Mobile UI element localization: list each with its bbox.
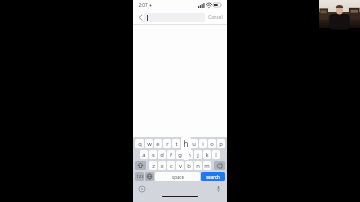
button[interactable]: x bbox=[158, 161, 166, 170]
button[interactable]: i bbox=[199, 139, 207, 148]
button[interactable]: Dictate bbox=[214, 185, 222, 193]
button[interactable] bbox=[144, 13, 205, 22]
staticText: w bbox=[147, 140, 152, 148]
staticText: s bbox=[152, 151, 155, 159]
button[interactable]: u bbox=[190, 139, 198, 148]
button[interactable]: e bbox=[154, 139, 162, 148]
button[interactable]: Emoji bbox=[138, 185, 146, 193]
staticText: y bbox=[184, 140, 187, 148]
staticText: r bbox=[166, 140, 169, 148]
staticText: j bbox=[197, 151, 199, 159]
button[interactable]: space bbox=[155, 172, 200, 181]
staticText: h bbox=[187, 151, 191, 159]
button[interactable]: r bbox=[163, 139, 171, 148]
button[interactable]: n bbox=[194, 161, 202, 170]
button[interactable]: m bbox=[203, 161, 211, 170]
button[interactable]: search bbox=[201, 172, 225, 181]
button[interactable]: Shift bbox=[135, 161, 146, 170]
button[interactable]: p bbox=[217, 139, 225, 148]
staticText: 2:07 bbox=[138, 2, 148, 8]
staticText: e bbox=[156, 140, 160, 148]
button[interactable]: k bbox=[203, 150, 211, 159]
staticText: z bbox=[152, 162, 155, 170]
staticText: m bbox=[204, 162, 210, 170]
staticText: g bbox=[178, 151, 182, 159]
button[interactable]: b bbox=[185, 161, 193, 170]
staticText: i bbox=[202, 140, 204, 148]
staticText: Cancel bbox=[208, 14, 223, 20]
staticText: v bbox=[179, 162, 182, 170]
staticText: n bbox=[196, 162, 200, 170]
staticText: t bbox=[175, 140, 178, 148]
button[interactable]: c bbox=[167, 161, 175, 170]
button[interactable]: z bbox=[149, 161, 157, 170]
button[interactable]: Cancel bbox=[207, 14, 224, 20]
staticText: p bbox=[219, 140, 223, 148]
staticText: x bbox=[160, 162, 164, 170]
staticText: 123 bbox=[136, 174, 144, 180]
staticText: h bbox=[183, 138, 189, 150]
button[interactable]: v bbox=[176, 161, 184, 170]
button[interactable]: h bbox=[185, 150, 193, 159]
button[interactable]: w bbox=[145, 139, 153, 148]
staticText: c bbox=[170, 162, 173, 170]
staticText: k bbox=[205, 151, 209, 159]
button[interactable]: s bbox=[149, 150, 157, 159]
button[interactable]: Back bbox=[136, 11, 144, 23]
button[interactable]: t bbox=[172, 139, 180, 148]
staticText: q bbox=[138, 140, 142, 148]
button[interactable]: a bbox=[140, 150, 148, 159]
button[interactable]: 123 bbox=[135, 172, 144, 181]
staticText: d bbox=[160, 151, 164, 159]
button[interactable]: g bbox=[176, 150, 184, 159]
button[interactable]: q bbox=[135, 139, 144, 148]
button[interactable]: j bbox=[194, 150, 202, 159]
staticText: search bbox=[206, 174, 220, 180]
staticText: u bbox=[192, 140, 196, 148]
button[interactable]: f bbox=[167, 150, 175, 159]
staticText: a bbox=[142, 151, 146, 159]
staticText: l bbox=[215, 151, 217, 159]
staticText: b bbox=[187, 162, 191, 170]
button[interactable]: y bbox=[181, 139, 189, 148]
button[interactable]: d bbox=[158, 150, 166, 159]
staticText: f bbox=[170, 151, 172, 159]
button[interactable]: Backspace bbox=[214, 161, 225, 170]
staticText: o bbox=[210, 140, 214, 148]
button[interactable]: l bbox=[212, 150, 220, 159]
button[interactable]: Switch keyboard bbox=[145, 172, 154, 181]
button[interactable]: o bbox=[208, 139, 216, 148]
staticText: space bbox=[172, 174, 184, 180]
